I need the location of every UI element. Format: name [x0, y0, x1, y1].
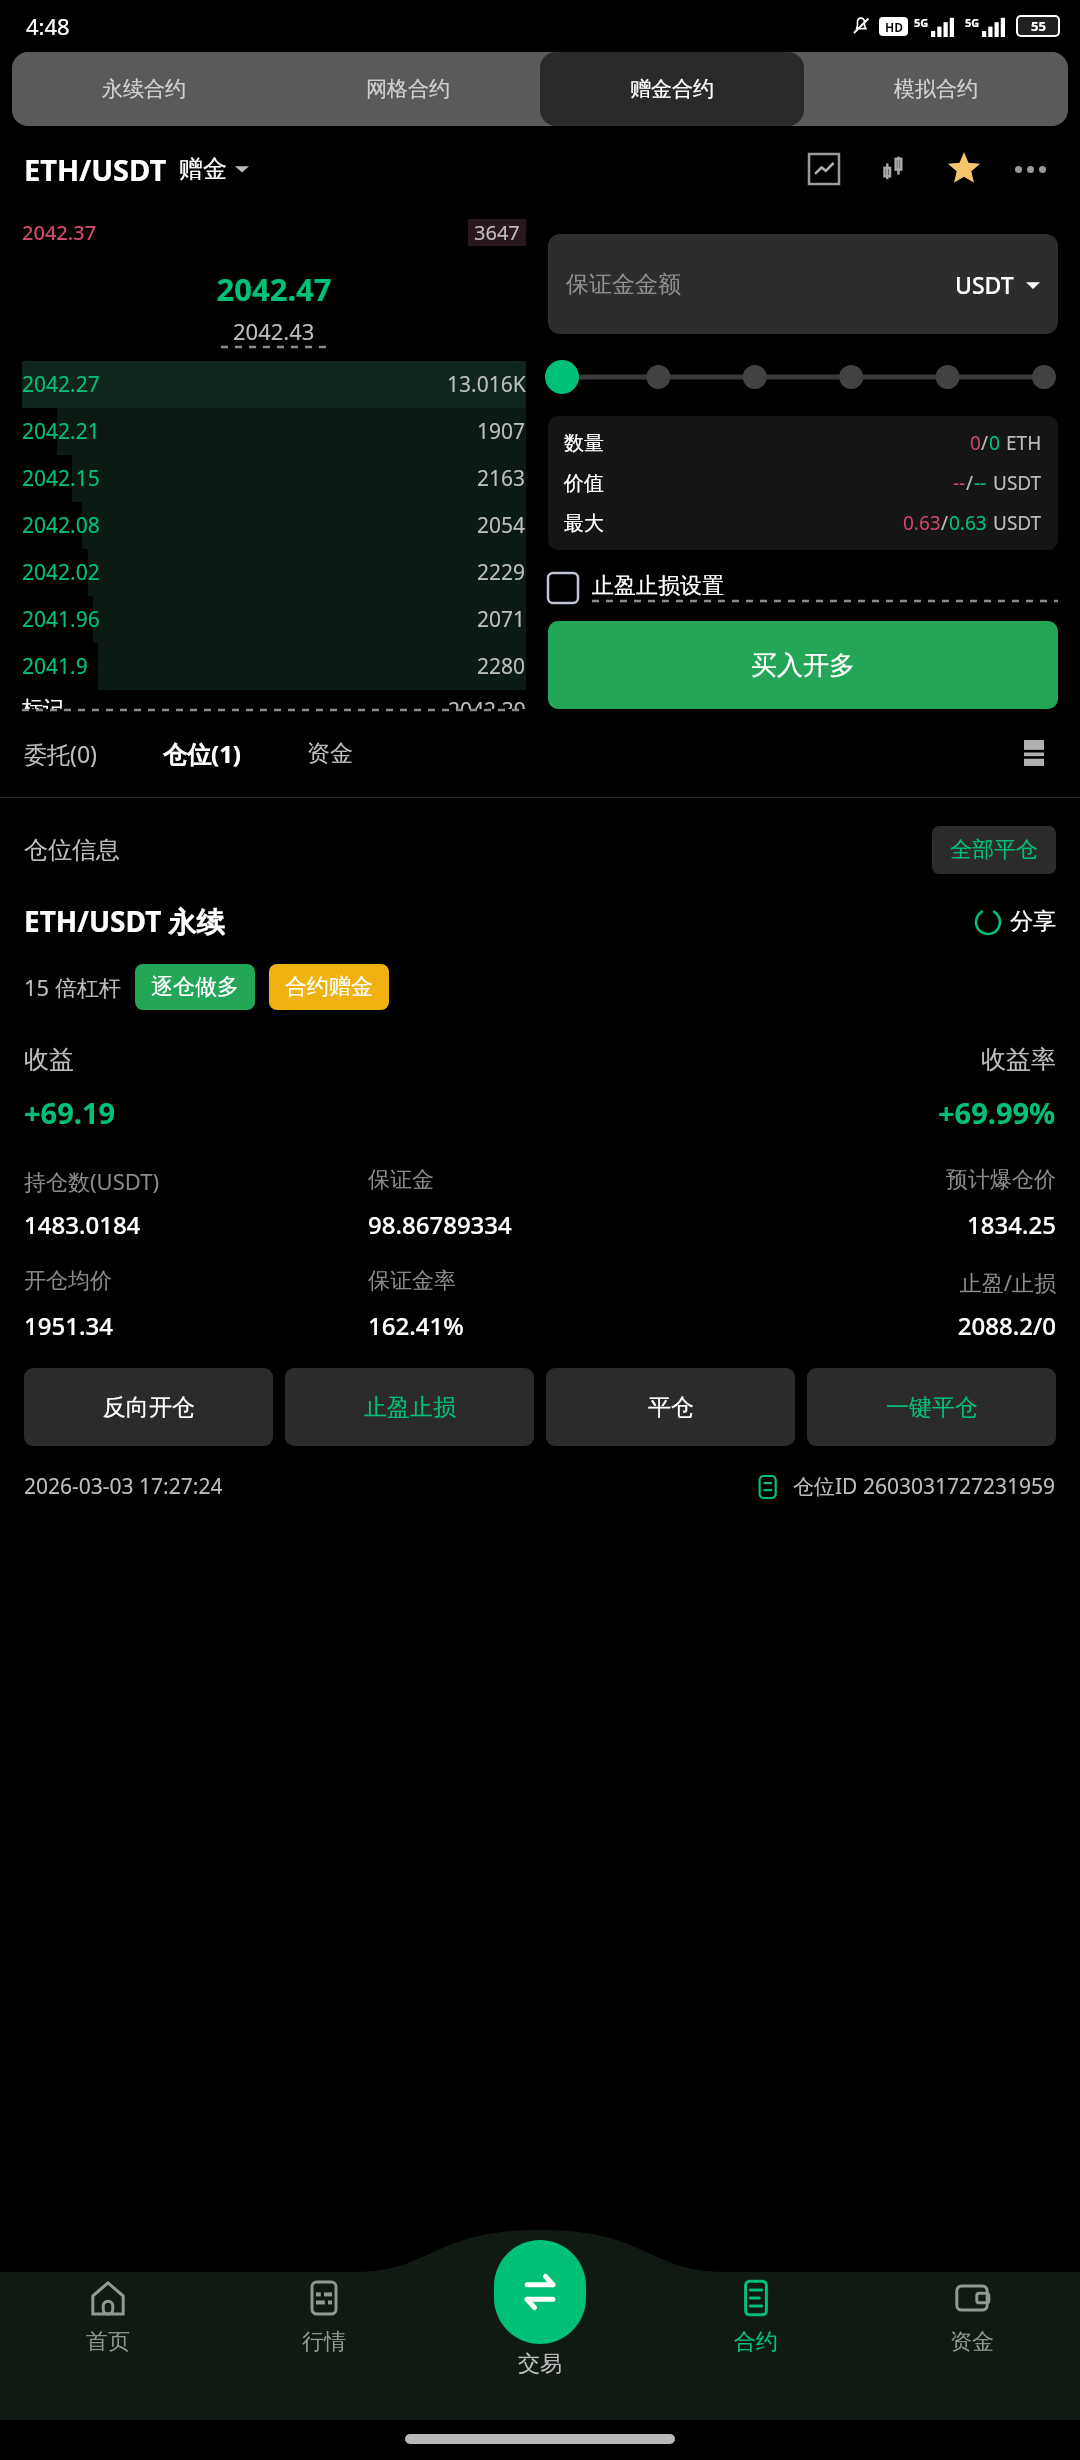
staticText: 4:48 [26, 11, 70, 41]
staticText: 数量 [564, 431, 604, 456]
staticText: 0.63 [949, 510, 987, 536]
staticText: 2042.21 [22, 417, 100, 446]
button[interactable]: Trade [494, 2240, 586, 2344]
staticText: 仓位(1) [163, 737, 241, 770]
button[interactable]: 赠金合约 [540, 52, 804, 126]
staticText: 2041.9 [22, 652, 88, 681]
button[interactable]: 合约 [648, 2278, 864, 2405]
button[interactable]: Chart [798, 143, 850, 195]
staticText: 赠金合约 [630, 76, 714, 102]
staticText: 价值 [564, 471, 604, 496]
staticText: 1483.0184 [24, 1208, 368, 1241]
button[interactable]: 仓位(1) [163, 737, 241, 770]
staticText: 分享 [1010, 907, 1056, 936]
button[interactable]: 合约赠金 [269, 964, 389, 1010]
staticText: 赠金 [179, 154, 227, 184]
staticText: 2163 [477, 464, 526, 493]
staticText: 行情 [302, 2328, 346, 2356]
button[interactable]: 一键平仓 [807, 1368, 1056, 1446]
button[interactable]: 行情 [216, 2278, 432, 2405]
staticText: 止盈止损设置 [592, 572, 724, 600]
staticText: 2280 [477, 652, 526, 681]
staticText: 1834.25 [712, 1208, 1056, 1241]
button[interactable]: 分享 [974, 907, 1056, 936]
button[interactable]: 交易 [518, 2278, 562, 2405]
button[interactable]: 买入开多 [548, 621, 1058, 709]
staticText: 标记 [22, 696, 64, 709]
staticText: 止盈止损 [364, 1393, 456, 1422]
staticText: 仓位信息 [24, 835, 120, 865]
button[interactable]: 逐仓做多 [135, 964, 255, 1010]
staticText: -- [974, 470, 987, 496]
staticText: 2042.43 [233, 316, 315, 346]
staticText: / [966, 470, 974, 496]
staticText: USDT [955, 269, 1014, 300]
staticText: 预计爆仓价 [712, 1166, 1056, 1194]
staticText: 模拟合约 [894, 76, 978, 102]
staticText: USDT [993, 510, 1042, 536]
staticText: 一键平仓 [886, 1393, 978, 1422]
button[interactable]: 标记 [22, 696, 526, 709]
button[interactable]: 保证金金额 [548, 234, 1058, 334]
staticText: 合约赠金 [285, 973, 373, 1001]
staticText: +69.19 [24, 1093, 116, 1132]
staticText: HD [885, 19, 903, 35]
button[interactable]: 平仓 [546, 1368, 795, 1446]
staticText: 2088.2/0 [712, 1309, 1056, 1342]
staticText: 全部平仓 [950, 836, 1038, 864]
button[interactable]: 全部平仓 [932, 826, 1056, 874]
staticText: 2054 [477, 511, 526, 540]
staticText: 5G [965, 15, 980, 30]
button[interactable]: 模拟合约 [804, 52, 1068, 126]
button[interactable]: 2042.08 [22, 502, 526, 549]
button[interactable]: 永续合约 [12, 52, 276, 126]
button[interactable]: 资金 [307, 739, 353, 768]
staticText: 1907 [477, 417, 526, 446]
staticText: 合约 [734, 2328, 778, 2356]
button[interactable]: Favorite [938, 143, 990, 195]
staticText: 永续合约 [102, 76, 186, 102]
button[interactable]: 资金 [864, 2278, 1080, 2405]
staticText: 资金 [950, 2328, 994, 2356]
staticText: / [981, 430, 989, 456]
staticText: 3647 [474, 219, 520, 246]
staticText: 98.86789334 [368, 1208, 712, 1241]
button[interactable]: 网格合约 [276, 52, 540, 126]
button[interactable]: Candles [868, 143, 920, 195]
staticText: 2042.37 [22, 219, 97, 246]
button[interactable]: 首页 [0, 2278, 216, 2405]
button[interactable]: 2042.27 [22, 361, 526, 408]
button[interactable]: 2042.02 [22, 549, 526, 596]
button[interactable]: 止盈止损设置 [548, 572, 1058, 603]
staticText: 首页 [86, 2328, 130, 2356]
staticText: 0 [989, 430, 1000, 456]
staticText: 买入开多 [751, 649, 855, 682]
staticText: ETH/USDT 永续 [24, 902, 225, 940]
button[interactable]: 2042.21 [22, 408, 526, 455]
staticText: 2042.15 [22, 464, 100, 493]
staticText: 2042.27 [22, 370, 100, 399]
button[interactable]: 2041.96 [22, 596, 526, 643]
button[interactable]: Filter [1012, 731, 1056, 775]
staticText: 2042.08 [22, 511, 100, 540]
staticText: 2229 [477, 558, 526, 587]
button[interactable]: 止盈止损 [285, 1368, 534, 1446]
button[interactable]: 反向开仓 [24, 1368, 273, 1446]
staticText: ETH/USDT [24, 150, 167, 189]
staticText: 反向开仓 [103, 1393, 195, 1422]
staticText: 13.016K [447, 370, 526, 399]
button[interactable]: 2042.15 [22, 455, 526, 502]
staticText: 开仓均价 [24, 1267, 368, 1295]
staticText: 持仓数(USDT) [24, 1166, 368, 1196]
staticText: 委托(0) [24, 738, 97, 769]
staticText: 55 [1031, 17, 1046, 35]
staticText: 资金 [307, 739, 353, 768]
button[interactable]: More [1004, 143, 1056, 195]
staticText: 保证金金额 [566, 270, 681, 299]
staticText: 逐仓做多 [151, 973, 239, 1001]
staticText: 0 [970, 430, 981, 456]
staticText: 保证金 [368, 1166, 712, 1194]
button[interactable] [548, 360, 1058, 394]
button[interactable]: 委托(0) [24, 738, 97, 769]
button[interactable]: 2041.9 [22, 643, 526, 690]
